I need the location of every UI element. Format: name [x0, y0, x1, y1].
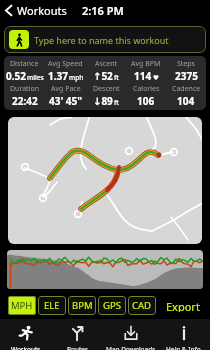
staticText: Duration [10, 84, 40, 94]
staticText: Type here to name this workout [34, 34, 169, 46]
button[interactable]: Map Downloads [104, 319, 157, 350]
button[interactable]: Workouts [0, 1, 71, 20]
staticText: 114 [134, 69, 152, 83]
button[interactable]: GPS [98, 296, 126, 315]
staticText: Export [166, 299, 200, 312]
staticText: Calories [133, 84, 160, 94]
button[interactable]: BPM [68, 296, 96, 315]
staticText: 106 [137, 94, 155, 108]
staticText: 2375 [175, 69, 198, 83]
button[interactable]: Type here to name this workout [4, 26, 206, 53]
staticText: Map Downloads [106, 345, 156, 350]
staticText: ELE [44, 299, 60, 312]
staticText: Avg Speed [48, 59, 83, 69]
staticText: GPS [103, 299, 121, 312]
staticText: MPH [11, 299, 33, 312]
staticText: Help & Info [166, 345, 201, 350]
staticText: Workouts [17, 3, 67, 18]
staticText: 0.52 [6, 69, 26, 83]
staticText: Note: 0.60 miles were considered invalid [4, 109, 206, 110]
staticText: Descent [93, 84, 120, 94]
staticText: miles [27, 73, 44, 82]
staticText: Distance [10, 59, 39, 69]
staticText: ↓89 [93, 94, 113, 108]
staticText: 22:42 [12, 94, 38, 108]
staticText: Routes [67, 345, 89, 350]
staticText: 1.37 [48, 69, 68, 83]
staticText: ♥ [153, 74, 159, 82]
button[interactable]: Workouts [0, 319, 52, 350]
staticText: Avg BPM [131, 59, 161, 69]
staticText: ↑52 [93, 69, 113, 83]
staticText: ft [114, 98, 119, 107]
button[interactable]: MPH [8, 296, 36, 315]
staticText: Workouts [11, 345, 41, 350]
staticText: Avg Pace [51, 84, 81, 94]
button[interactable]: Help & Info [157, 319, 210, 350]
staticText: mph [69, 73, 84, 82]
button[interactable]: ELE [38, 296, 66, 315]
button[interactable]: Export [164, 296, 202, 315]
button[interactable]: Routes [52, 319, 104, 350]
staticText: ft [114, 73, 119, 82]
staticText: 104 [177, 94, 195, 108]
staticText: Ascent [95, 59, 117, 69]
staticText: 43' 45" [49, 94, 82, 108]
staticText: BPM [72, 299, 93, 312]
staticText: Steps [177, 59, 195, 69]
staticText: Cadence [172, 84, 201, 94]
button[interactable]: CAD [128, 296, 156, 315]
staticText: 2:16 PM [82, 3, 124, 18]
staticText: CAD [132, 299, 152, 312]
